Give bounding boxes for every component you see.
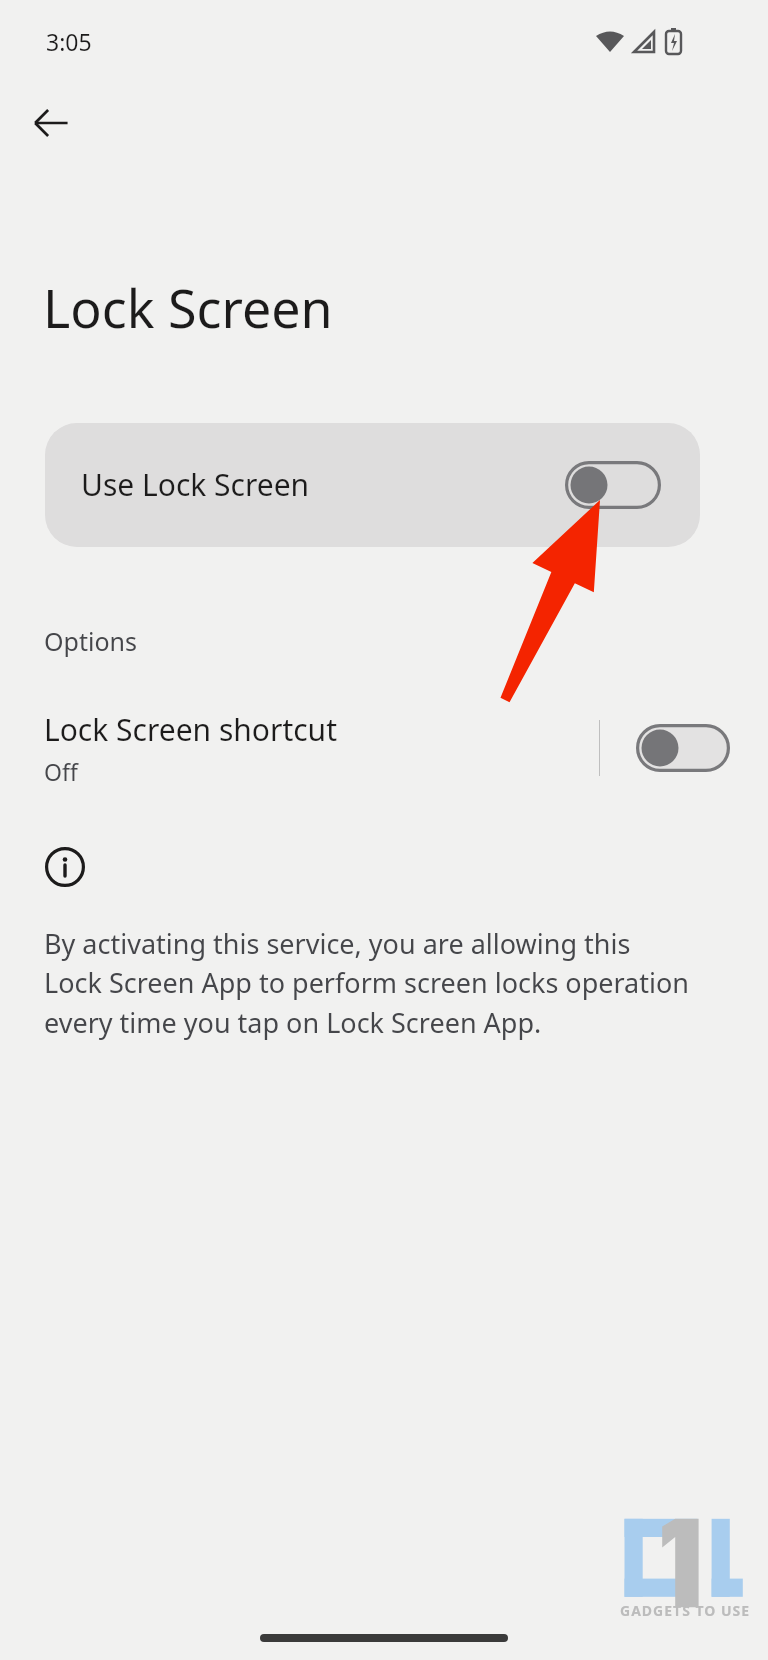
staticText: By activating this service, you are allo…: [44, 925, 694, 1041]
button[interactable]: Use Lock Screen: [45, 423, 700, 547]
staticText: GADGETS TO USE: [620, 1601, 751, 1620]
staticText: Lock Screen: [43, 272, 333, 343]
staticText: 3:05: [46, 26, 92, 57]
button[interactable]: Toggle: [565, 461, 661, 509]
staticText: Off: [44, 756, 78, 787]
other: Information: [45, 847, 85, 887]
staticText: Lock Screen shortcut: [44, 709, 337, 750]
staticText: Options: [44, 624, 137, 658]
button[interactable]: Back: [18, 90, 84, 156]
button[interactable]: Toggle: [636, 724, 730, 772]
staticText: Use Lock Screen: [81, 464, 310, 505]
button[interactable]: Lock Screen shortcut: [0, 690, 768, 806]
